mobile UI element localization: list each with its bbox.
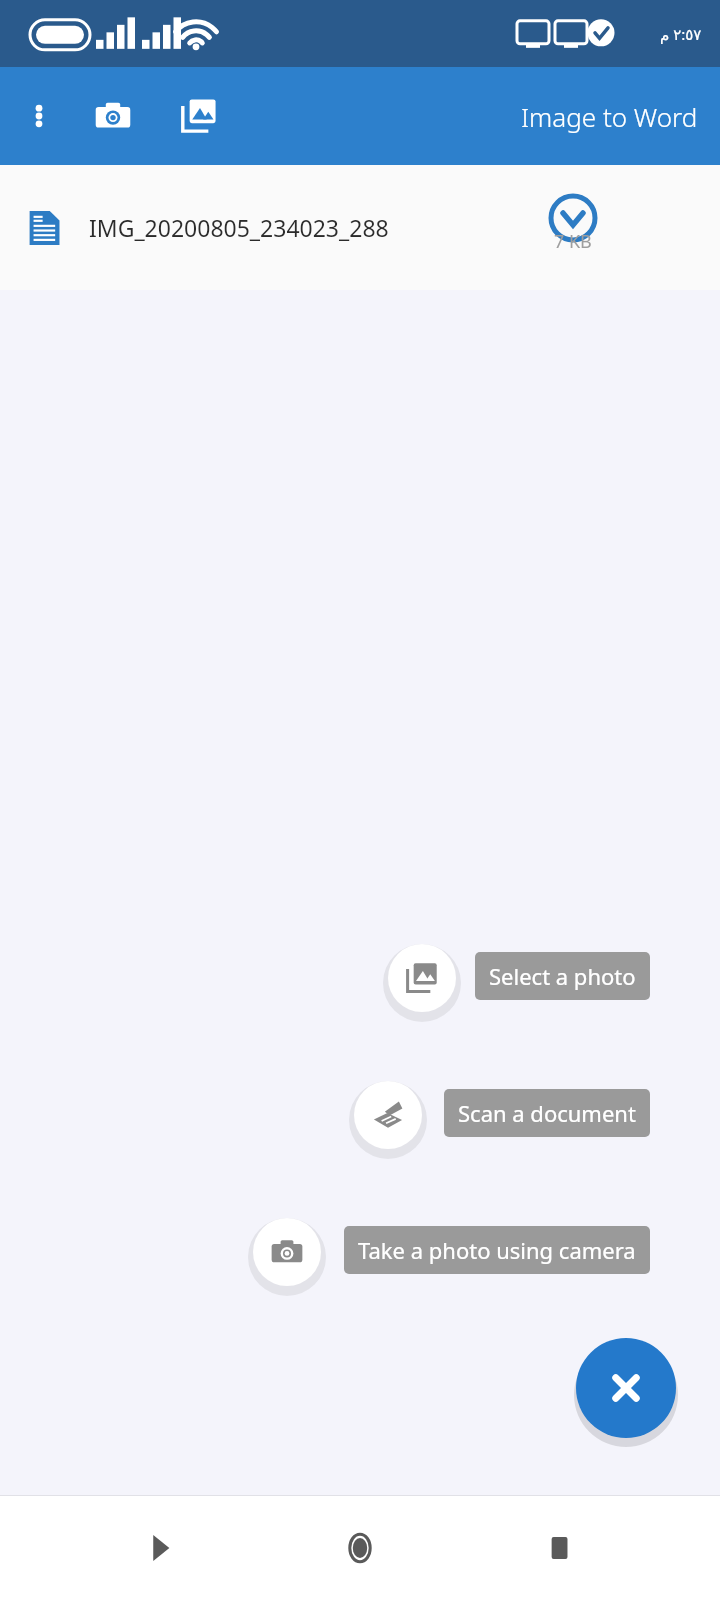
staticText: Take a photo using camera <box>358 1235 636 1265</box>
button[interactable]: More options <box>12 89 66 143</box>
button[interactable]: Take a photo using camera <box>84 87 142 145</box>
button[interactable]: Scan a document <box>444 1089 650 1137</box>
button[interactable]: Home <box>320 1508 400 1588</box>
button[interactable]: Select a photo <box>475 952 650 1000</box>
button[interactable]: Select a photo <box>388 944 456 1012</box>
button[interactable]: Take a photo using camera <box>253 1218 321 1286</box>
button[interactable]: Close menu <box>576 1338 676 1438</box>
staticText: Image to Word <box>521 99 698 134</box>
staticText: ٢:٥٧ م <box>660 24 702 44</box>
button[interactable]: Select a photo <box>170 87 228 145</box>
staticText: Select a photo <box>489 961 636 991</box>
button[interactable]: Download <box>530 185 616 271</box>
button[interactable]: IMG_20200805_234023_288 <box>0 165 720 290</box>
staticText: 7 KB <box>554 229 592 254</box>
button[interactable]: Recent apps <box>520 1508 600 1588</box>
button[interactable]: Take a photo using camera <box>344 1226 650 1274</box>
staticText: IMG_20200805_234023_288 <box>89 212 389 243</box>
staticText: Scan a document <box>458 1098 636 1128</box>
button[interactable]: Back <box>120 1508 200 1588</box>
button[interactable]: Scan a document <box>354 1081 422 1149</box>
